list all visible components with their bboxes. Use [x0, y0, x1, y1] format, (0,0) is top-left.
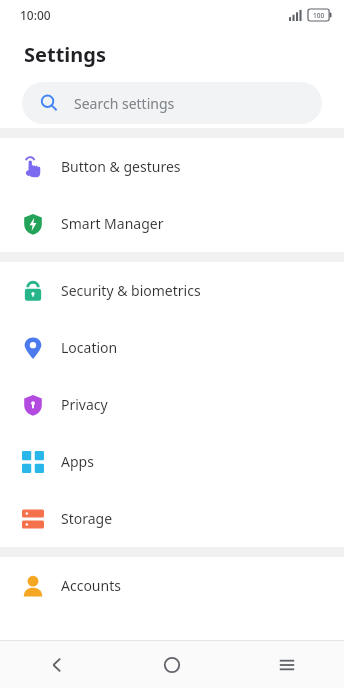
button[interactable]: Accounts — [0, 557, 344, 614]
button[interactable]: Search settings — [22, 82, 322, 124]
button[interactable]: Smart Manager — [0, 195, 344, 252]
button[interactable]: Recent apps — [229, 641, 344, 688]
staticText: Settings — [24, 41, 106, 68]
staticText: Storage — [61, 509, 113, 528]
staticText: Privacy — [61, 395, 108, 414]
staticText: Location — [61, 338, 118, 357]
staticText: 100 — [313, 11, 325, 20]
staticText: Apps — [61, 452, 94, 471]
staticText: 10:00 — [20, 7, 51, 23]
staticText: Accounts — [61, 576, 121, 595]
staticText: Button & gestures — [61, 157, 181, 176]
button[interactable]: Home — [114, 641, 229, 688]
button[interactable]: Button & gestures — [0, 138, 344, 195]
staticText: Search settings — [74, 94, 175, 113]
button[interactable]: Security & biometrics — [0, 262, 344, 319]
staticText: Security & biometrics — [61, 281, 201, 300]
staticText: Smart Manager — [61, 214, 164, 233]
button[interactable]: Privacy — [0, 376, 344, 433]
button[interactable]: Location — [0, 319, 344, 376]
button[interactable]: Storage — [0, 490, 344, 547]
button[interactable]: Apps — [0, 433, 344, 490]
button[interactable]: Back — [0, 641, 114, 688]
